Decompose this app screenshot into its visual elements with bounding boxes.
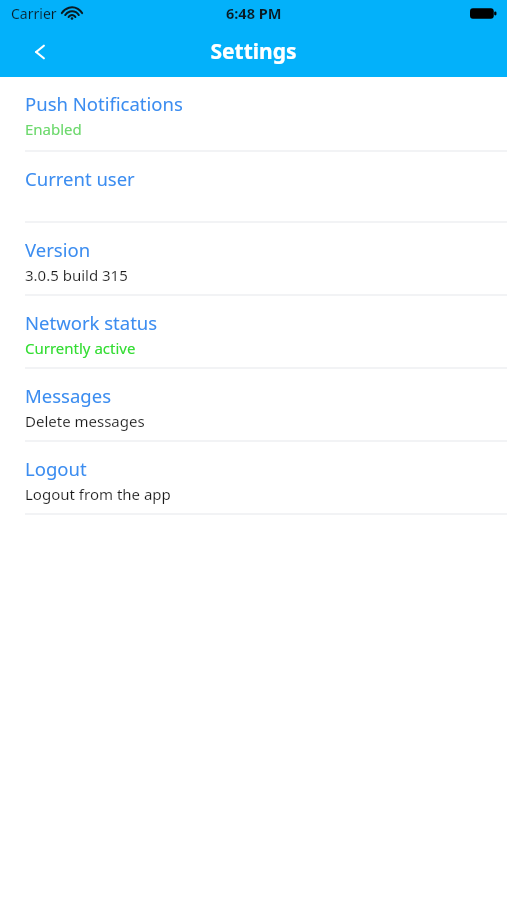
- staticText: Logout: [25, 456, 87, 481]
- staticText: Network status: [25, 310, 158, 335]
- staticText: 3.0.5 build 315: [25, 265, 128, 285]
- button[interactable]: Current user: [0, 152, 507, 221]
- staticText: Messages: [25, 383, 111, 408]
- staticText: Settings: [210, 37, 297, 66]
- staticText: Push Notifications: [25, 91, 183, 116]
- staticText: Logout from the app: [25, 484, 171, 504]
- staticText: Currently active: [25, 338, 136, 358]
- button[interactable]: Messages: [0, 369, 507, 440]
- staticText: Delete messages: [25, 411, 145, 431]
- staticText: 6:48 PM: [226, 3, 282, 23]
- button[interactable]: Push Notifications: [0, 77, 507, 150]
- button[interactable]: Version: [0, 223, 507, 294]
- button[interactable]: Network status: [0, 296, 507, 367]
- staticText: Current user: [25, 166, 135, 191]
- staticText: Carrier: [11, 4, 57, 23]
- staticText: Enabled: [25, 119, 82, 139]
- staticText: Version: [25, 237, 91, 262]
- button[interactable]: Logout: [0, 442, 507, 513]
- button[interactable]: Back: [16, 28, 64, 76]
